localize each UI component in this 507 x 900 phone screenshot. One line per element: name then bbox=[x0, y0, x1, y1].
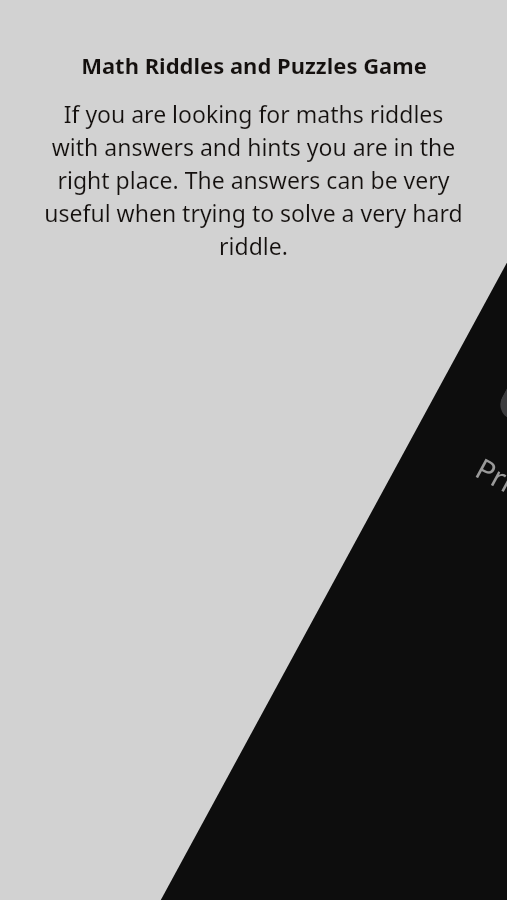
staticText: If you are looking for maths riddles wit… bbox=[42, 98, 465, 262]
button[interactable]: Privacy Policy bbox=[461, 440, 507, 578]
staticText: Privacy Policy bbox=[469, 448, 507, 570]
button[interactable]: Restart bbox=[495, 353, 507, 554]
staticText: Math Riddles and Puzzles Game bbox=[81, 50, 427, 80]
